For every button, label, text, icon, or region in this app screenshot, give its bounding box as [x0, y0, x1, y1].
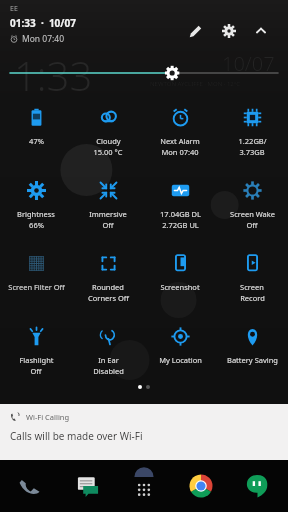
staticText: 2.72GB UL [162, 220, 199, 230]
staticText: 15.00 °C [93, 147, 123, 157]
staticText: 01:33 · 10/07 [10, 16, 76, 30]
staticText: Screenshot [160, 282, 200, 292]
staticText: Off [30, 366, 42, 376]
button[interactable]: Messages [71, 469, 105, 503]
staticText: Screen Filter Off [8, 282, 65, 292]
staticText: Disabled [93, 366, 124, 376]
button[interactable]: Screen [216, 242, 288, 315]
button[interactable]: Chrome [184, 469, 218, 503]
staticText: My Location [159, 355, 202, 365]
button[interactable]: Flashlight [0, 315, 72, 388]
staticText: Wi-Fi Calling [26, 412, 70, 422]
staticText: Mon 07:40 [161, 147, 199, 157]
staticText: EE [10, 4, 18, 14]
button[interactable]: Next Alarm [144, 96, 216, 169]
staticText: 66% [29, 220, 44, 230]
button[interactable]: In Ear [72, 315, 144, 388]
staticText: 17.04GB DL [160, 209, 201, 219]
button[interactable]: Settings [216, 18, 242, 44]
button[interactable]: Wi-Fi Calling [0, 404, 288, 460]
button[interactable]: 17.04GB DL [144, 169, 216, 242]
staticText: Brightness [17, 209, 55, 219]
button[interactable]: Battery Saving [216, 315, 288, 388]
staticText: 3.73GB [239, 147, 265, 157]
staticText: Calls will be made over Wi-Fi [10, 429, 143, 443]
staticText: Screen Wake [230, 209, 275, 219]
staticText: Mon 07:40 [22, 33, 65, 45]
staticText: Battery Saving [227, 355, 278, 365]
staticText: Next Alarm [160, 136, 200, 146]
button[interactable]: Collapse [248, 18, 274, 44]
button[interactable]: Rounded [72, 242, 144, 315]
staticText: Immersive [89, 209, 127, 219]
staticText: Rounded [92, 282, 124, 292]
staticText: 1.22GB/ [238, 136, 267, 146]
staticText: NEWTON AYCLIFFE · MON · 12°C [150, 80, 241, 88]
button[interactable]: Screen Wake [216, 169, 288, 242]
button[interactable]: Screen Filter Off [0, 242, 72, 315]
button[interactable]: Cloudy [72, 96, 144, 169]
staticText: Off [102, 220, 114, 230]
button[interactable]: Edit tiles [182, 18, 208, 44]
staticText: Record [240, 293, 265, 303]
button[interactable]: Immersive [72, 169, 144, 242]
staticText: 10/07 [222, 50, 275, 77]
staticText: Flashlight [19, 355, 54, 365]
button[interactable]: Phone [14, 469, 48, 503]
staticText: Off [246, 220, 258, 230]
staticText: 47% [29, 136, 44, 146]
button[interactable]: 1.22GB/ [216, 96, 288, 169]
button[interactable]: Apps [127, 469, 161, 503]
button[interactable]: Brightness [0, 169, 72, 242]
button[interactable] [0, 58, 288, 88]
button[interactable]: Hangouts [240, 469, 274, 503]
staticText: 1:33 [14, 48, 93, 102]
staticText: Cloudy [96, 136, 121, 146]
button[interactable]: 47% [0, 96, 72, 169]
staticText: Screen [240, 282, 264, 292]
button[interactable]: My Location [144, 315, 216, 388]
staticText: In Ear [98, 355, 119, 365]
button[interactable]: Screenshot [144, 242, 216, 315]
staticText: Corners Off [88, 293, 129, 303]
